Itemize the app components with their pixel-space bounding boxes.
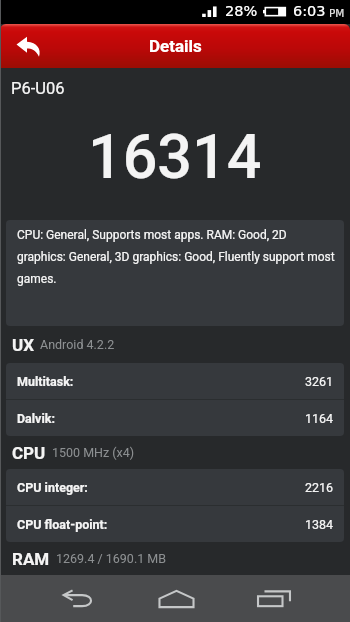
staticText: PM xyxy=(329,7,345,19)
staticText: 1269.4 / 1690.1 MB xyxy=(56,551,167,566)
staticText: 3261 xyxy=(305,374,334,389)
button[interactable]: CPU integer: xyxy=(6,469,344,505)
staticText: 16314 xyxy=(88,121,262,192)
staticText: Multitask: xyxy=(17,374,74,389)
staticText: CPU: General, Supports most apps. RAM: G… xyxy=(17,228,335,286)
button[interactable]: Back xyxy=(0,24,56,68)
button[interactable]: Dalvik: xyxy=(6,400,344,436)
staticText: 1500 MHz (x4) xyxy=(52,445,135,460)
staticText: RAM xyxy=(12,549,50,569)
staticText: Details xyxy=(149,36,202,56)
staticText: 1384 xyxy=(305,517,334,532)
staticText: CPU integer: xyxy=(17,480,88,495)
staticText: 1164 xyxy=(305,411,334,426)
staticText: CPU xyxy=(12,443,46,463)
staticText: 6:03 xyxy=(293,3,326,20)
staticText: 28% xyxy=(225,3,258,20)
staticText: 2216 xyxy=(305,480,334,495)
button[interactable]: CPU float-point: xyxy=(6,506,344,542)
button[interactable]: Recent apps xyxy=(226,575,322,622)
button[interactable]: Back xyxy=(30,575,126,622)
staticText: UX xyxy=(12,335,34,355)
staticText: CPU float-point: xyxy=(17,517,108,532)
staticText: P6-U06 xyxy=(11,79,65,98)
button[interactable]: Multitask: xyxy=(6,363,344,399)
button[interactable]: Home xyxy=(128,575,224,622)
staticText: Android 4.2.2 xyxy=(40,337,115,352)
staticText: Dalvik: xyxy=(17,411,55,426)
